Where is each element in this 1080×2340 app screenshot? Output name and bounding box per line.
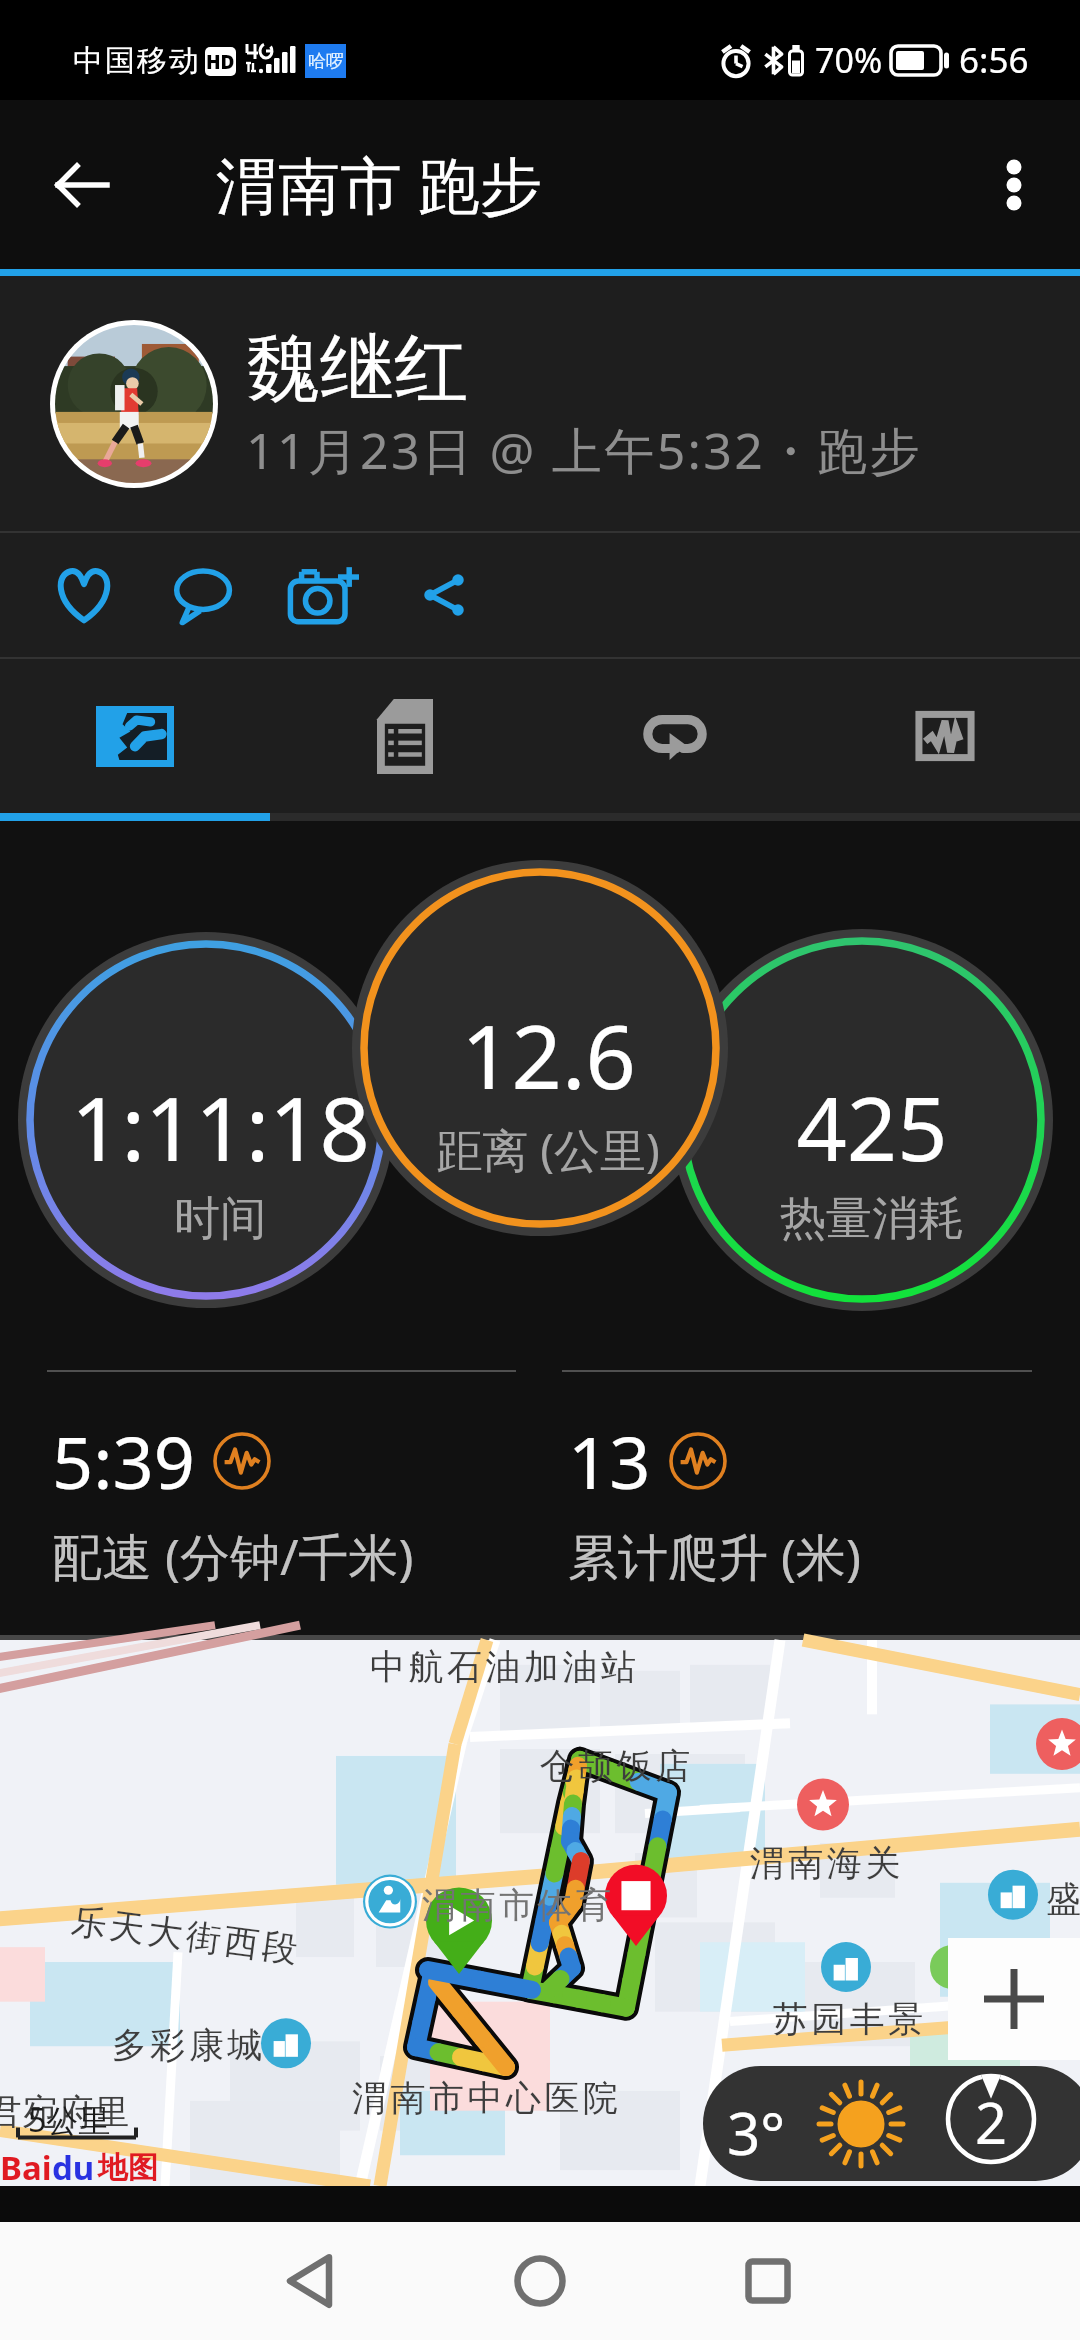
staticText: 乐天大街西段	[67, 1898, 302, 1972]
staticText: 地图	[98, 2149, 158, 2187]
staticText: 魏继红	[246, 323, 468, 416]
button[interactable]: Laps	[540, 659, 810, 813]
staticText: 425	[796, 1067, 948, 1187]
staticText: 时间	[174, 1190, 266, 1248]
button[interactable]: 魏继红	[0, 276, 1080, 531]
button[interactable]: Back	[30, 133, 134, 237]
button[interactable]: Analysis	[810, 659, 1080, 813]
button[interactable]: Share	[384, 533, 504, 657]
button[interactable]: Comment	[144, 533, 264, 657]
staticText: 2	[975, 2084, 1008, 2160]
staticText: 70%	[815, 37, 883, 83]
staticText: 渭南市体育	[422, 1883, 615, 1927]
staticText: 5公里	[28, 2098, 111, 2142]
button[interactable]: Home	[430, 2222, 650, 2340]
button[interactable]: Details	[270, 659, 540, 813]
staticText: 渭南市 跑步	[216, 142, 543, 227]
button[interactable]: Back	[200, 2222, 420, 2340]
staticText: 中国移动	[72, 42, 200, 80]
staticText: 距离 (公里)	[436, 1118, 660, 1181]
staticText: 5:39	[52, 1412, 195, 1510]
button[interactable]: More options	[966, 137, 1062, 233]
staticText: 13	[568, 1412, 651, 1510]
button[interactable]: Recents	[658, 2222, 878, 2340]
button[interactable]: Zoom in	[948, 1938, 1080, 2060]
staticText: 3°	[727, 2093, 786, 2172]
button[interactable]: Add photo	[264, 533, 384, 657]
staticText: 仓颉饭店	[538, 1744, 692, 1788]
staticText: 1:11:18	[71, 1067, 370, 1187]
staticText: Bai	[0, 2145, 52, 2190]
button[interactable]: Map	[0, 659, 270, 813]
staticText: 盛	[1046, 1877, 1080, 1921]
staticText: 配速 (分钟/千米)	[52, 1522, 414, 1590]
staticText: 中航石油加油站	[370, 1645, 640, 1689]
staticText: 君宛府里	[0, 2090, 130, 2134]
button[interactable]: 3°	[703, 2066, 1080, 2181]
staticText: 11月23日 @ 上午5:32・跑步	[246, 416, 922, 484]
staticText: 渭南海关	[748, 1841, 902, 1885]
staticText: 苏园丰景	[771, 1997, 925, 2041]
staticText: 12.6	[461, 995, 636, 1115]
staticText: 热量消耗	[780, 1190, 964, 1248]
staticText: 累计爬升 (米)	[568, 1522, 861, 1590]
staticText: 渭南市中心医院	[352, 2076, 622, 2120]
staticText: 6:56	[959, 36, 1029, 84]
staticText: 多彩康城	[110, 2023, 264, 2067]
staticText: du	[52, 2145, 95, 2190]
staticText: HD	[206, 49, 235, 75]
staticText: 哈啰	[308, 50, 344, 73]
button[interactable]: Like	[24, 533, 144, 657]
